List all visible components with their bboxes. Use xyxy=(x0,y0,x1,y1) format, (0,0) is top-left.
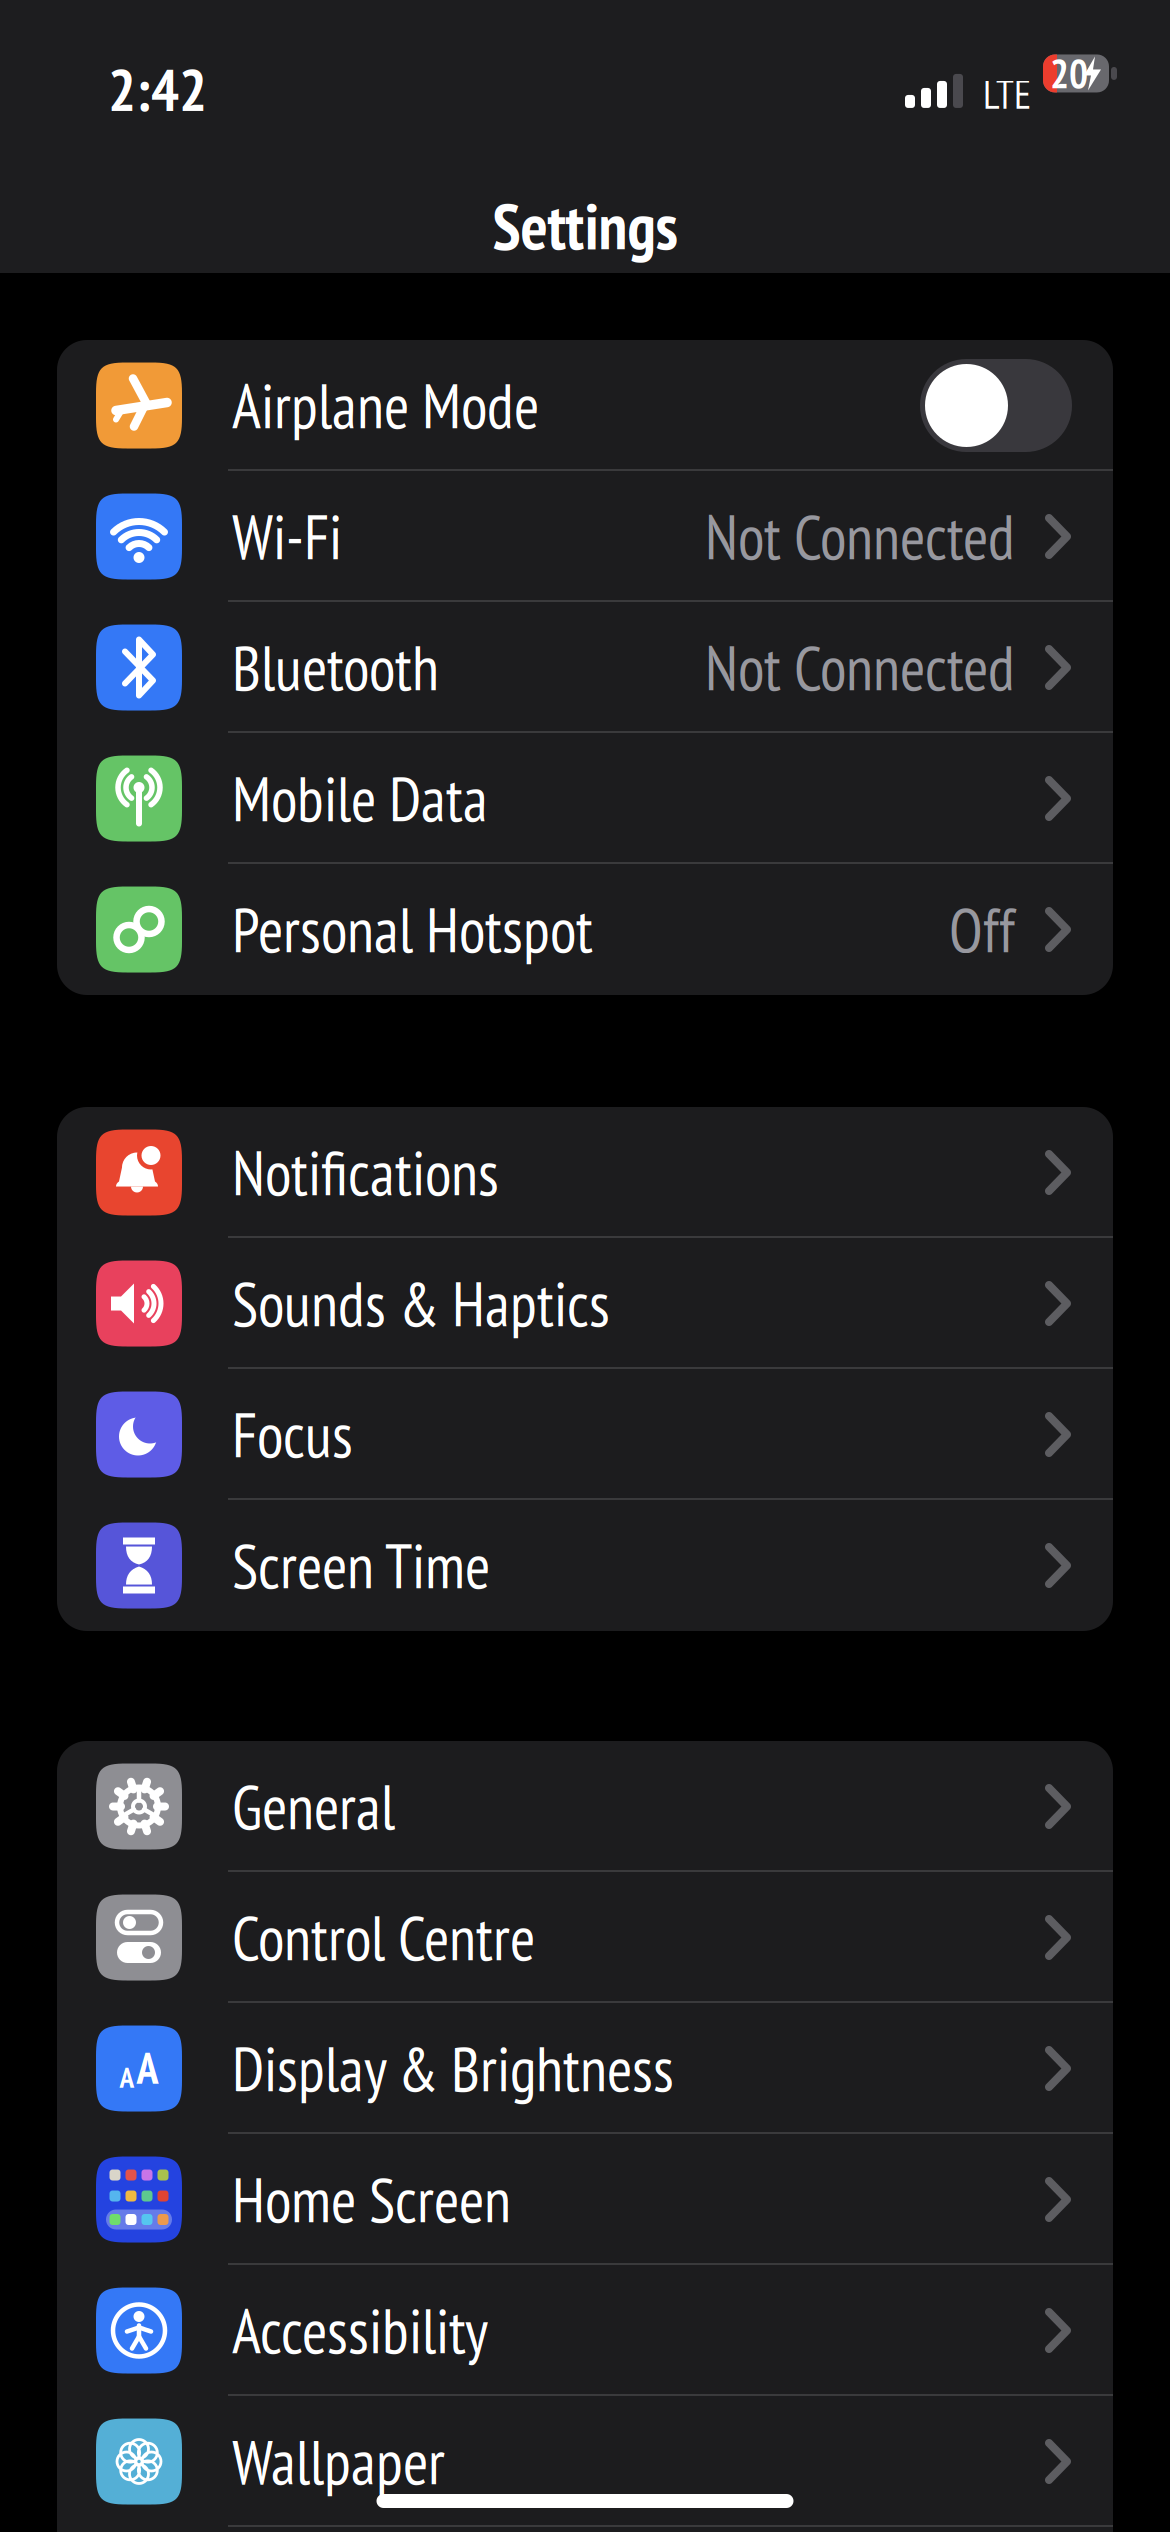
staticText: Focus xyxy=(232,1395,353,1474)
staticText: Control Centre xyxy=(232,1898,535,1977)
staticText: Wallpaper xyxy=(232,2422,445,2501)
staticText: Display & Brightness xyxy=(232,2029,674,2108)
button[interactable]: Mobile Data xyxy=(57,733,1113,864)
staticText: A xyxy=(119,2058,134,2096)
button[interactable]: General xyxy=(57,1741,1113,1872)
staticText: Accessibility xyxy=(232,2291,488,2370)
staticText: Mobile Data xyxy=(232,759,488,838)
button[interactable]: Wi-Fi xyxy=(57,471,1113,602)
button[interactable]: Bluetooth xyxy=(57,602,1113,733)
staticText: Off xyxy=(949,890,1015,969)
button[interactable]: Focus xyxy=(57,1369,1113,1500)
staticText: Notifications xyxy=(232,1133,499,1212)
staticText: 20 xyxy=(1050,48,1088,99)
staticText: Settings xyxy=(492,184,677,267)
button[interactable]: Sounds & Haptics xyxy=(57,1238,1113,1369)
button[interactable]: Control Centre xyxy=(57,1872,1113,2003)
staticText: Not Connected xyxy=(705,497,1015,576)
button[interactable]: Personal Hotspot xyxy=(57,864,1113,995)
button[interactable]: Notifications xyxy=(57,1107,1113,1238)
staticText: General xyxy=(232,1767,395,1846)
button[interactable]: Screen Time xyxy=(57,1500,1113,1631)
staticText: 2:42 xyxy=(108,51,207,127)
button[interactable]: A xyxy=(57,2003,1113,2134)
staticText: A xyxy=(136,2039,158,2096)
button[interactable]: Wallpaper xyxy=(57,2396,1113,2527)
staticText: Home Screen xyxy=(232,2160,511,2239)
staticText: Airplane Mode xyxy=(232,366,539,445)
button[interactable]: Accessibility xyxy=(57,2265,1113,2396)
button[interactable]: Home Screen xyxy=(57,2134,1113,2265)
staticText: Bluetooth xyxy=(232,628,439,707)
staticText: Personal Hotspot xyxy=(232,890,593,969)
staticText: Screen Time xyxy=(232,1526,490,1605)
button[interactable]: Airplane Mode xyxy=(920,359,1072,452)
staticText: Sounds & Haptics xyxy=(232,1264,610,1343)
staticText: LTE xyxy=(983,68,1031,120)
staticText: Not Connected xyxy=(705,628,1015,707)
staticText: Wi-Fi xyxy=(232,497,342,576)
